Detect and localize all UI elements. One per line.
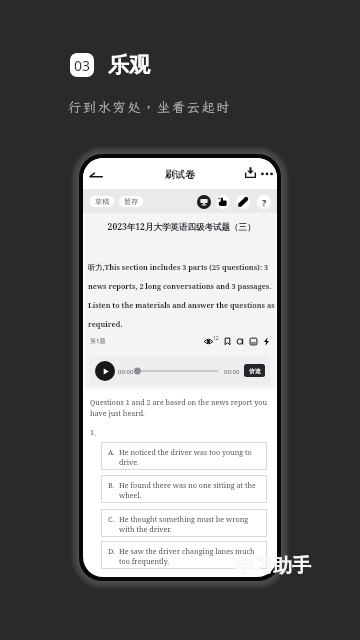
staticText: 学习助手 xyxy=(235,554,311,578)
staticText: He thought something must be wrong with … xyxy=(119,514,263,534)
staticText: He saw the driver changing lanes much to… xyxy=(119,546,263,566)
button[interactable]: Bookmark xyxy=(223,337,232,346)
staticText: 12 xyxy=(213,335,219,342)
button[interactable]: C. xyxy=(101,509,267,537)
staticText: 刷试卷 xyxy=(165,168,195,181)
staticText: 乐观 xyxy=(108,52,150,78)
staticText: 暂存 xyxy=(124,197,139,206)
staticText: 2023年12月大学英语四级考试题（三） xyxy=(86,221,277,233)
button[interactable]: Tool xyxy=(197,195,211,209)
staticText: 00:00 xyxy=(118,368,134,376)
staticText: D. xyxy=(108,546,115,556)
button[interactable]: Tool xyxy=(236,195,250,209)
button[interactable]: Help xyxy=(257,195,271,209)
staticText: 00:00 xyxy=(224,368,240,376)
button[interactable]: 暂存 xyxy=(119,196,143,207)
staticText: B. xyxy=(108,480,115,490)
staticText: 1、 xyxy=(90,427,102,437)
staticText: 第1题 xyxy=(90,337,106,345)
staticText: He noticed the driver was too young to d… xyxy=(119,447,263,467)
button[interactable]: More options xyxy=(261,167,273,179)
staticText: C. xyxy=(108,514,115,524)
button[interactable]: A. xyxy=(101,442,267,470)
button[interactable]: D. xyxy=(101,541,267,569)
button[interactable]: Views xyxy=(204,337,213,346)
button[interactable]: Play xyxy=(95,361,115,381)
staticText: 行到水穷处，坐看云起时 xyxy=(68,99,232,116)
staticText: 听力,This section includes 3 parts (25 que… xyxy=(88,262,275,329)
button[interactable]: Quick action xyxy=(262,337,271,346)
button[interactable]: 草稿 xyxy=(90,196,114,207)
button[interactable]: Back xyxy=(87,169,103,179)
button[interactable]: 倍速 xyxy=(244,364,265,377)
staticText: ? xyxy=(262,196,267,208)
staticText: Questions 1 and 2 are based on the news … xyxy=(90,397,270,418)
button[interactable]: B. xyxy=(101,475,267,503)
button[interactable]: Tool xyxy=(216,195,230,209)
staticText: 03 xyxy=(74,56,91,75)
staticText: 草稿 xyxy=(95,197,110,206)
button[interactable]: Notes xyxy=(249,337,258,346)
staticText: A. xyxy=(108,447,115,457)
button[interactable]: Download xyxy=(245,167,256,178)
staticText: He found there was no one sitting at the… xyxy=(119,480,263,500)
staticText: 倍速 xyxy=(249,367,261,375)
button[interactable]: Attach xyxy=(236,337,245,346)
